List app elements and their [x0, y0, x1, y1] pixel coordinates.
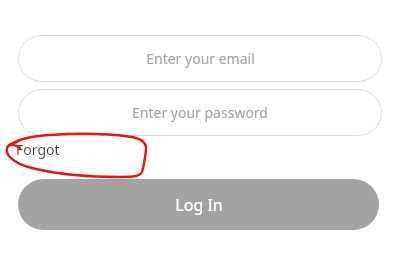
button[interactable]: Enter your password — [18, 89, 382, 136]
button[interactable]: Enter your email — [18, 35, 382, 82]
staticText: Forgot password? — [16, 140, 132, 160]
staticText: Log In — [175, 194, 223, 216]
staticText: Enter your password — [132, 103, 268, 122]
staticText: Enter your email — [146, 49, 255, 68]
button[interactable]: Log In — [18, 179, 379, 230]
button[interactable]: Forgot password? — [16, 140, 132, 160]
